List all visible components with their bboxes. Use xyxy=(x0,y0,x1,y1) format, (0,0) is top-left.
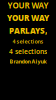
staticText: YOUR WAY xyxy=(7,0,48,11)
staticText: 4 selections xyxy=(12,38,43,45)
staticText: PARLAYS, xyxy=(9,25,47,36)
staticText: 4 selections xyxy=(9,47,47,56)
staticText: Brandon Aiyuk xyxy=(9,58,46,65)
staticText: YOUR WAY xyxy=(7,13,49,23)
